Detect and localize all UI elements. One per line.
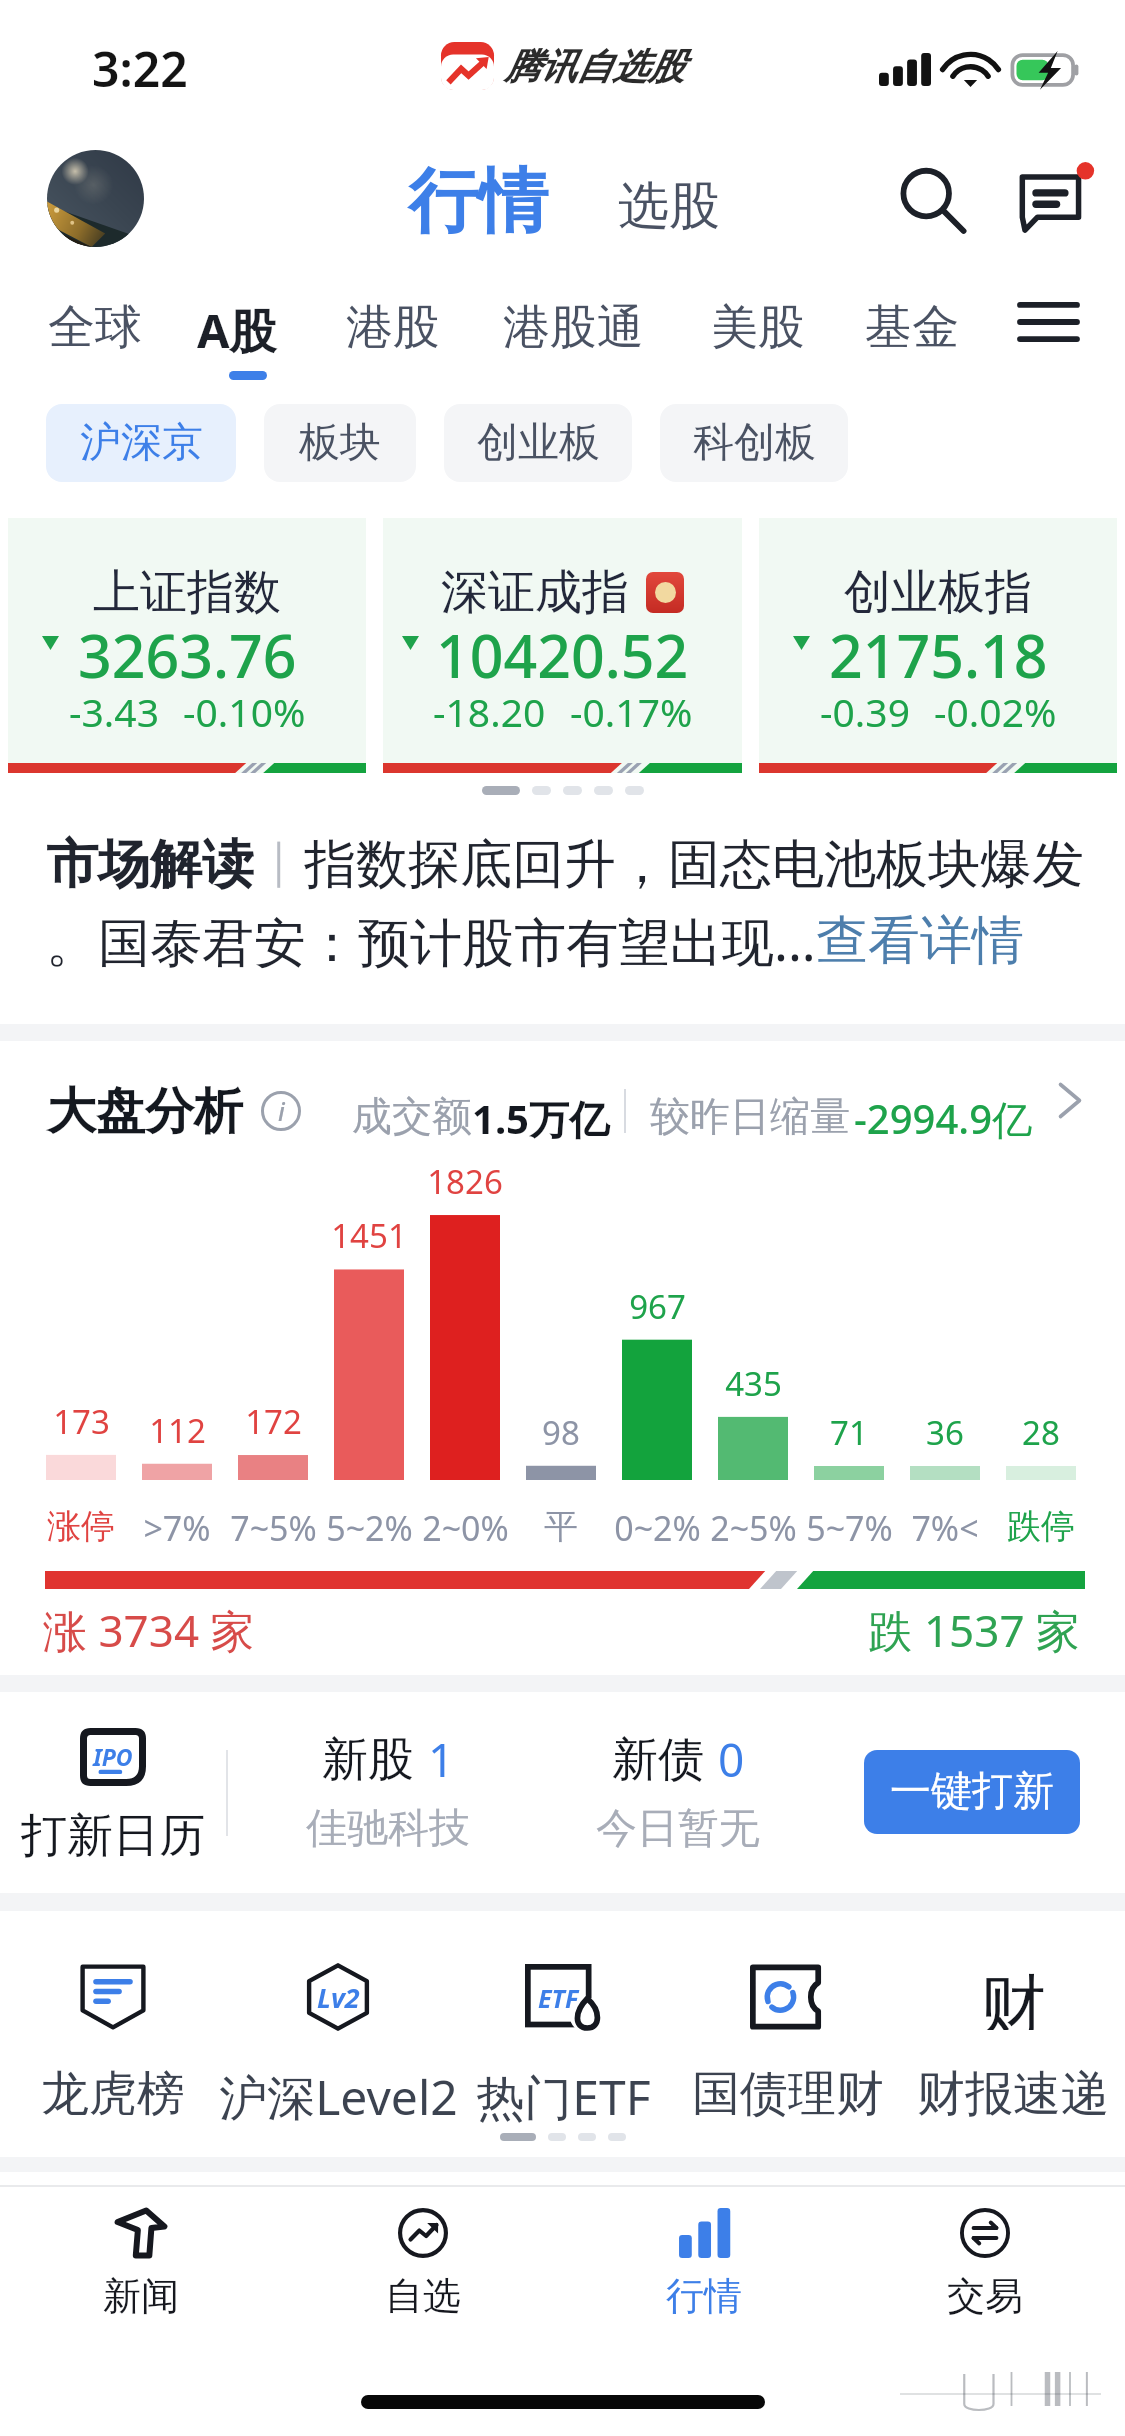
staticText: -3.43 bbox=[69, 685, 159, 738]
staticText: 今日暂无 bbox=[596, 1803, 760, 1855]
staticText: 打新日历 bbox=[21, 1807, 205, 1865]
button[interactable]: 沪深京 bbox=[46, 404, 236, 482]
staticText: 创业板 bbox=[477, 417, 600, 469]
staticText: 3:22 bbox=[92, 36, 188, 101]
staticText: 指数探底回升，固态电池板块爆发 bbox=[304, 832, 1084, 898]
staticText: 1.5万亿 bbox=[472, 1091, 609, 1146]
button[interactable] bbox=[900, 1911, 1125, 2111]
button[interactable]: 港股通 bbox=[485, 274, 662, 370]
staticText: 28 bbox=[1022, 1410, 1060, 1455]
button[interactable]: Search bbox=[881, 149, 985, 253]
button[interactable]: 板块 bbox=[264, 404, 416, 482]
staticText: 2~0% bbox=[422, 1505, 509, 1551]
button[interactable]: 上证指数 bbox=[8, 518, 366, 773]
staticText: 173 bbox=[53, 1399, 110, 1444]
staticText: 36 bbox=[926, 1410, 964, 1455]
staticText: Lv2 bbox=[317, 1979, 360, 2016]
staticText: 967 bbox=[629, 1284, 686, 1329]
staticText: 创业板指 bbox=[844, 563, 1032, 622]
button[interactable]: 大盘分析 bbox=[0, 1041, 1125, 1133]
staticText: 自选 bbox=[385, 2272, 461, 2320]
staticText: 172 bbox=[245, 1399, 302, 1444]
button[interactable]: A股 bbox=[179, 274, 295, 370]
staticText: A股 bbox=[197, 298, 277, 362]
staticText: 71 bbox=[830, 1410, 868, 1455]
staticText: -0.10% bbox=[183, 685, 306, 738]
staticText: >7% bbox=[143, 1505, 211, 1551]
staticText: 。国泰君安：预计股市有望出现... bbox=[46, 905, 816, 976]
staticText: 10420.52 bbox=[436, 615, 689, 695]
button[interactable]: 新闻 bbox=[0, 2187, 282, 2320]
staticText: 板块 bbox=[299, 417, 381, 469]
button[interactable]: 一键打新 bbox=[864, 1750, 1080, 1834]
button[interactable]: 行情 bbox=[408, 158, 548, 246]
button[interactable] bbox=[0, 1911, 225, 2111]
staticText: 5~2% bbox=[326, 1505, 413, 1551]
button[interactable]: 全球 bbox=[30, 274, 160, 370]
button[interactable] bbox=[450, 1911, 675, 2111]
staticText: 热门ETF bbox=[476, 2064, 651, 2130]
staticText: 全球 bbox=[48, 298, 142, 357]
staticText: 较昨日缩量 bbox=[650, 1091, 850, 1141]
button[interactable]: 新债 bbox=[563, 1728, 793, 1855]
button[interactable]: 自选 bbox=[282, 2187, 563, 2320]
staticText: 龙虎榜 bbox=[41, 2064, 185, 2124]
staticText: 上证指数 bbox=[93, 563, 281, 622]
staticText: 科创板 bbox=[693, 417, 816, 469]
staticText: ETF bbox=[538, 1981, 579, 2015]
staticText: 涨 3734 家 bbox=[43, 1600, 255, 1660]
staticText: 2~5% bbox=[710, 1505, 797, 1551]
staticText: 新闻 bbox=[103, 2272, 179, 2320]
button[interactable]: Profile bbox=[47, 150, 144, 247]
button[interactable]: 市场解读 bbox=[0, 832, 1125, 982]
staticText: 财 bbox=[980, 1964, 1046, 2030]
staticText: 5~7% bbox=[806, 1505, 893, 1551]
staticText: 一键打新 bbox=[890, 1766, 1054, 1818]
staticText: 行情 bbox=[666, 2272, 742, 2320]
staticText: 3263.76 bbox=[78, 615, 297, 695]
staticText: 深证成指 bbox=[441, 563, 629, 622]
button[interactable]: Messages bbox=[1003, 150, 1107, 254]
staticText: 成交额 bbox=[352, 1091, 472, 1141]
button[interactable]: 创业板 bbox=[444, 404, 632, 482]
button[interactable] bbox=[675, 1911, 900, 2111]
staticText: 沪深京 bbox=[80, 417, 203, 469]
button[interactable]: IPO bbox=[20, 1728, 205, 1865]
staticText: 1451 bbox=[331, 1213, 407, 1258]
button[interactable]: 美股 bbox=[693, 274, 823, 370]
staticText: 国债理财 bbox=[692, 2064, 884, 2124]
button[interactable] bbox=[225, 1911, 450, 2111]
button[interactable]: 深证成指 bbox=[383, 518, 742, 773]
staticText: 0 bbox=[718, 1728, 745, 1791]
button[interactable]: 创业板指 bbox=[759, 518, 1117, 773]
staticText: 7~5% bbox=[230, 1505, 317, 1551]
staticText: 查看详情 bbox=[816, 908, 1024, 974]
staticText: 0~2% bbox=[614, 1505, 701, 1551]
button[interactable]: 行情 bbox=[563, 2187, 844, 2320]
staticText: 435 bbox=[725, 1361, 782, 1406]
staticText: 交易 bbox=[947, 2272, 1023, 2320]
staticText: 美股 bbox=[711, 298, 805, 357]
button[interactable]: All markets bbox=[997, 274, 1100, 370]
staticText: -0.02% bbox=[934, 685, 1057, 738]
staticText: 选股 bbox=[618, 174, 720, 238]
staticText: -0.17% bbox=[570, 685, 693, 738]
staticText: 沪深Level2 bbox=[219, 2064, 458, 2130]
staticText: 新股 bbox=[322, 1731, 414, 1789]
staticText: 财报速递 bbox=[917, 2064, 1109, 2124]
button[interactable]: 新股 bbox=[273, 1728, 503, 1855]
staticText: 大盘分析 bbox=[47, 1081, 243, 1143]
button[interactable]: 选股 bbox=[618, 174, 720, 238]
staticText: 市场解读 bbox=[46, 832, 254, 898]
button[interactable]: 基金 bbox=[847, 274, 977, 370]
staticText: 1 bbox=[428, 1728, 455, 1791]
staticText: 行情 bbox=[408, 158, 548, 246]
button[interactable]: 科创板 bbox=[660, 404, 848, 482]
staticText: 跌停 bbox=[1007, 1505, 1075, 1548]
button[interactable]: 港股 bbox=[328, 274, 458, 370]
staticText: 7%< bbox=[911, 1505, 979, 1551]
button[interactable]: 交易 bbox=[844, 2187, 1125, 2320]
staticText: -18.20 bbox=[433, 685, 546, 738]
staticText: 2175.18 bbox=[829, 615, 1048, 695]
staticText: 1826 bbox=[427, 1159, 503, 1204]
